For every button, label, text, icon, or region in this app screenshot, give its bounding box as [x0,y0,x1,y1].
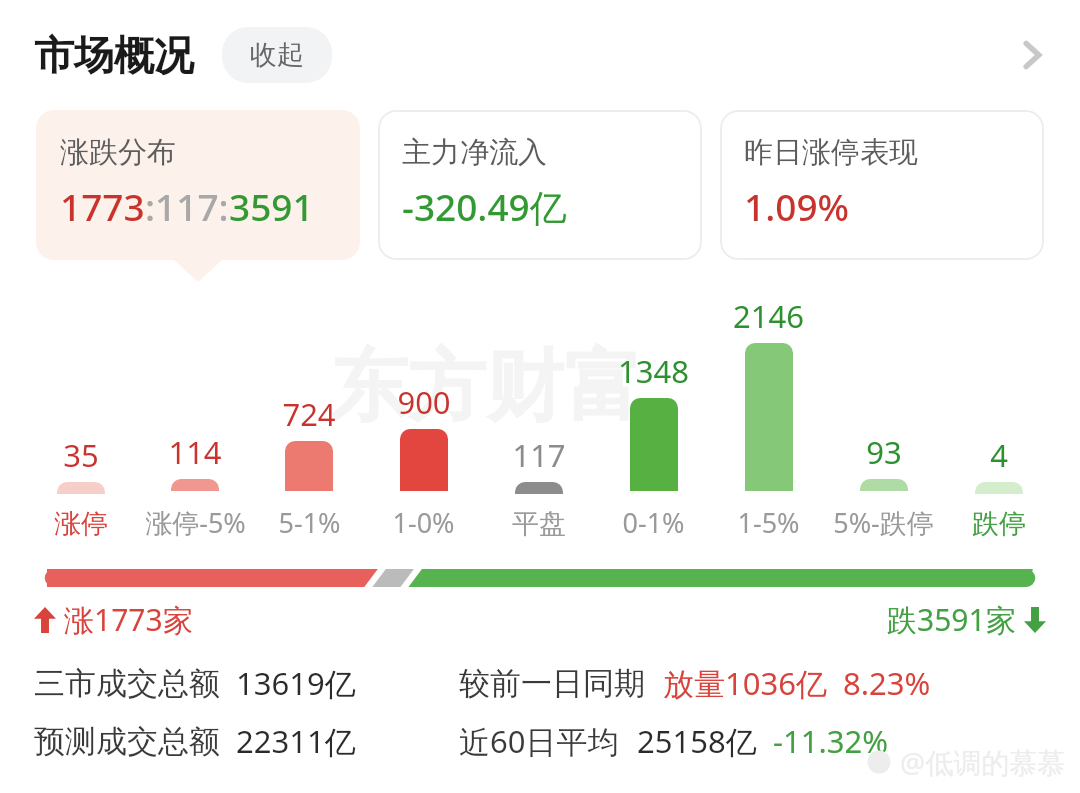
staticText: 主力净流入 [402,134,547,171]
staticText: 跌3591家 [887,599,1016,640]
button[interactable]: 涨跌分布 [36,110,360,260]
staticText: 涨1773家 [64,599,193,640]
staticText: 东方财富 [330,338,642,436]
button[interactable]: More [1002,25,1062,85]
staticText: 跌停 [972,507,1026,541]
staticText: 35 [63,434,99,476]
staticText: 114 [168,431,222,473]
staticText: 117 [512,434,566,476]
staticText: @低调的慕慕 [900,743,1066,781]
staticText: 涨停 [54,507,108,541]
staticText: 涨停-5% [145,504,246,541]
staticText: 3591 [229,181,314,231]
staticText: 1-5% [737,504,800,541]
staticText: 较前一日同期 [459,664,645,703]
staticText: 4 [990,434,1008,476]
staticText: 收起 [250,38,304,72]
staticText: 2146 [733,295,804,337]
button[interactable]: 收起 [222,27,332,83]
staticText: 22311亿 [236,720,356,762]
staticText: 25158亿 [637,720,757,762]
staticText: 1348 [618,350,689,392]
staticText: 平盘 [512,507,566,541]
staticText: -11.32% [773,720,888,762]
staticText: -320.49亿 [402,181,567,232]
staticText: 13619亿 [236,662,356,704]
staticText: 900 [397,381,451,423]
staticText: 5%-跌停 [833,504,934,541]
staticText: 三市成交总额 [34,664,220,703]
staticText: 市场概况 [34,30,194,80]
staticText: 涨跌分布 [60,134,176,171]
staticText: 93 [866,431,902,473]
staticText: 724 [282,393,336,435]
staticText: 8.23% [843,662,931,704]
staticText: 5-1% [278,504,341,541]
staticText: 0-1% [622,504,685,541]
button[interactable]: 主力净流入 [378,110,702,260]
staticText: 近60日平均 [459,720,619,762]
button[interactable]: 昨日涨停表现 [720,110,1044,260]
staticText: 预测成交总额 [34,722,220,761]
staticText: :117: [145,181,229,231]
staticText: 1.09% [744,181,850,231]
staticText: 放量1036亿 [663,662,827,704]
staticText: 昨日涨停表现 [744,134,918,171]
staticText: 1-0% [392,504,455,541]
staticText: 1773 [60,181,145,231]
